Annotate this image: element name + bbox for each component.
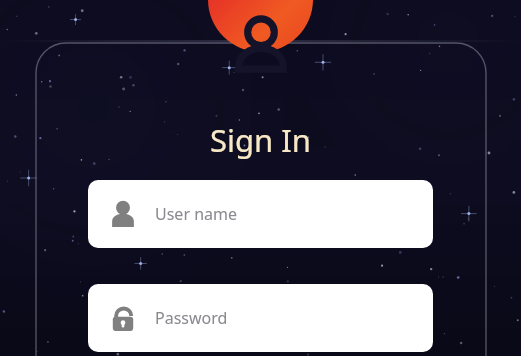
other: Profile bbox=[230, 19, 292, 71]
button[interactable]: User name bbox=[88, 180, 433, 248]
staticText: Sign In bbox=[0, 119, 521, 161]
staticText: Password bbox=[155, 307, 228, 329]
staticText: User name bbox=[155, 203, 238, 225]
button[interactable]: Password bbox=[88, 284, 433, 352]
